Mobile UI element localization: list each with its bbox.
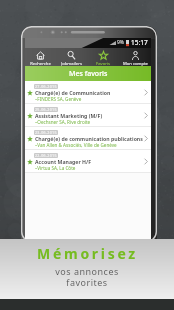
button[interactable]: 27-06-2015 bbox=[25, 81, 151, 104]
staticText: Jobmailers bbox=[61, 61, 82, 66]
button[interactable]: 23-06-2015 bbox=[25, 127, 151, 150]
button[interactable]: Jobmailers bbox=[56, 48, 87, 66]
staticText: –Van Allen & Associés, Ville de Genève bbox=[35, 142, 117, 148]
staticText: –Oechsner SA, Rive droite bbox=[35, 119, 91, 125]
button[interactable]: 25-06-2015 bbox=[25, 104, 151, 127]
staticText: Account Manager H/F bbox=[35, 158, 92, 165]
staticText: –FINDERS SA, Genève bbox=[35, 96, 82, 102]
staticText: 22-06-2015 bbox=[35, 153, 57, 158]
staticText: –Virtua SA, La Côte bbox=[35, 165, 76, 171]
staticText: 27-06-2015 bbox=[35, 84, 57, 89]
staticText: 25-06-2015 bbox=[35, 107, 57, 112]
staticText: Assistant Marketing (M/F) bbox=[35, 112, 103, 119]
staticText: Favoris bbox=[96, 61, 110, 66]
staticText: 9% bbox=[117, 39, 125, 46]
button[interactable]: Favoris bbox=[87, 48, 119, 66]
staticText: Mes favoris bbox=[69, 69, 108, 79]
staticText: Mon compte bbox=[123, 61, 148, 66]
button[interactable]: Mon compte bbox=[119, 48, 151, 66]
button[interactable]: Recherche bbox=[25, 48, 56, 66]
staticText: Mémorisez bbox=[37, 244, 138, 263]
staticText: Chargé(e) de communication publications … bbox=[35, 135, 145, 142]
staticText: 23-06-2015 bbox=[35, 130, 57, 135]
staticText: vos annonces favorites bbox=[55, 265, 119, 288]
staticText: 15:17 bbox=[131, 38, 148, 47]
button[interactable]: 22-06-2015 bbox=[25, 150, 151, 173]
staticText: Recherche bbox=[30, 61, 51, 66]
staticText: Chargé(e) de Communication bbox=[35, 89, 111, 96]
